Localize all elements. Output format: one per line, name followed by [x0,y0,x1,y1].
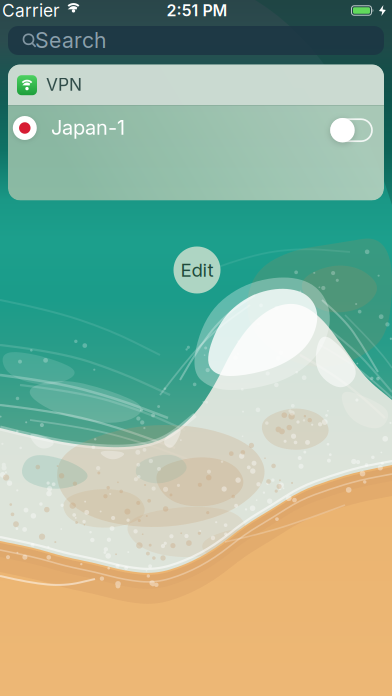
button[interactable]: VPN [8,64,384,105]
staticText: 2:51 PM [166,1,227,20]
staticText: Japan-1 [51,116,125,139]
staticText: Carrier [2,0,60,21]
staticText: VPN [46,74,82,95]
button[interactable]: Edit [173,246,220,293]
staticText: Edit [180,259,213,281]
button[interactable]: Search [8,26,384,55]
staticText: Search [35,28,107,53]
button[interactable]: Japan-1 VPN off [330,118,373,143]
button[interactable]: Japan-1 [8,104,384,154]
